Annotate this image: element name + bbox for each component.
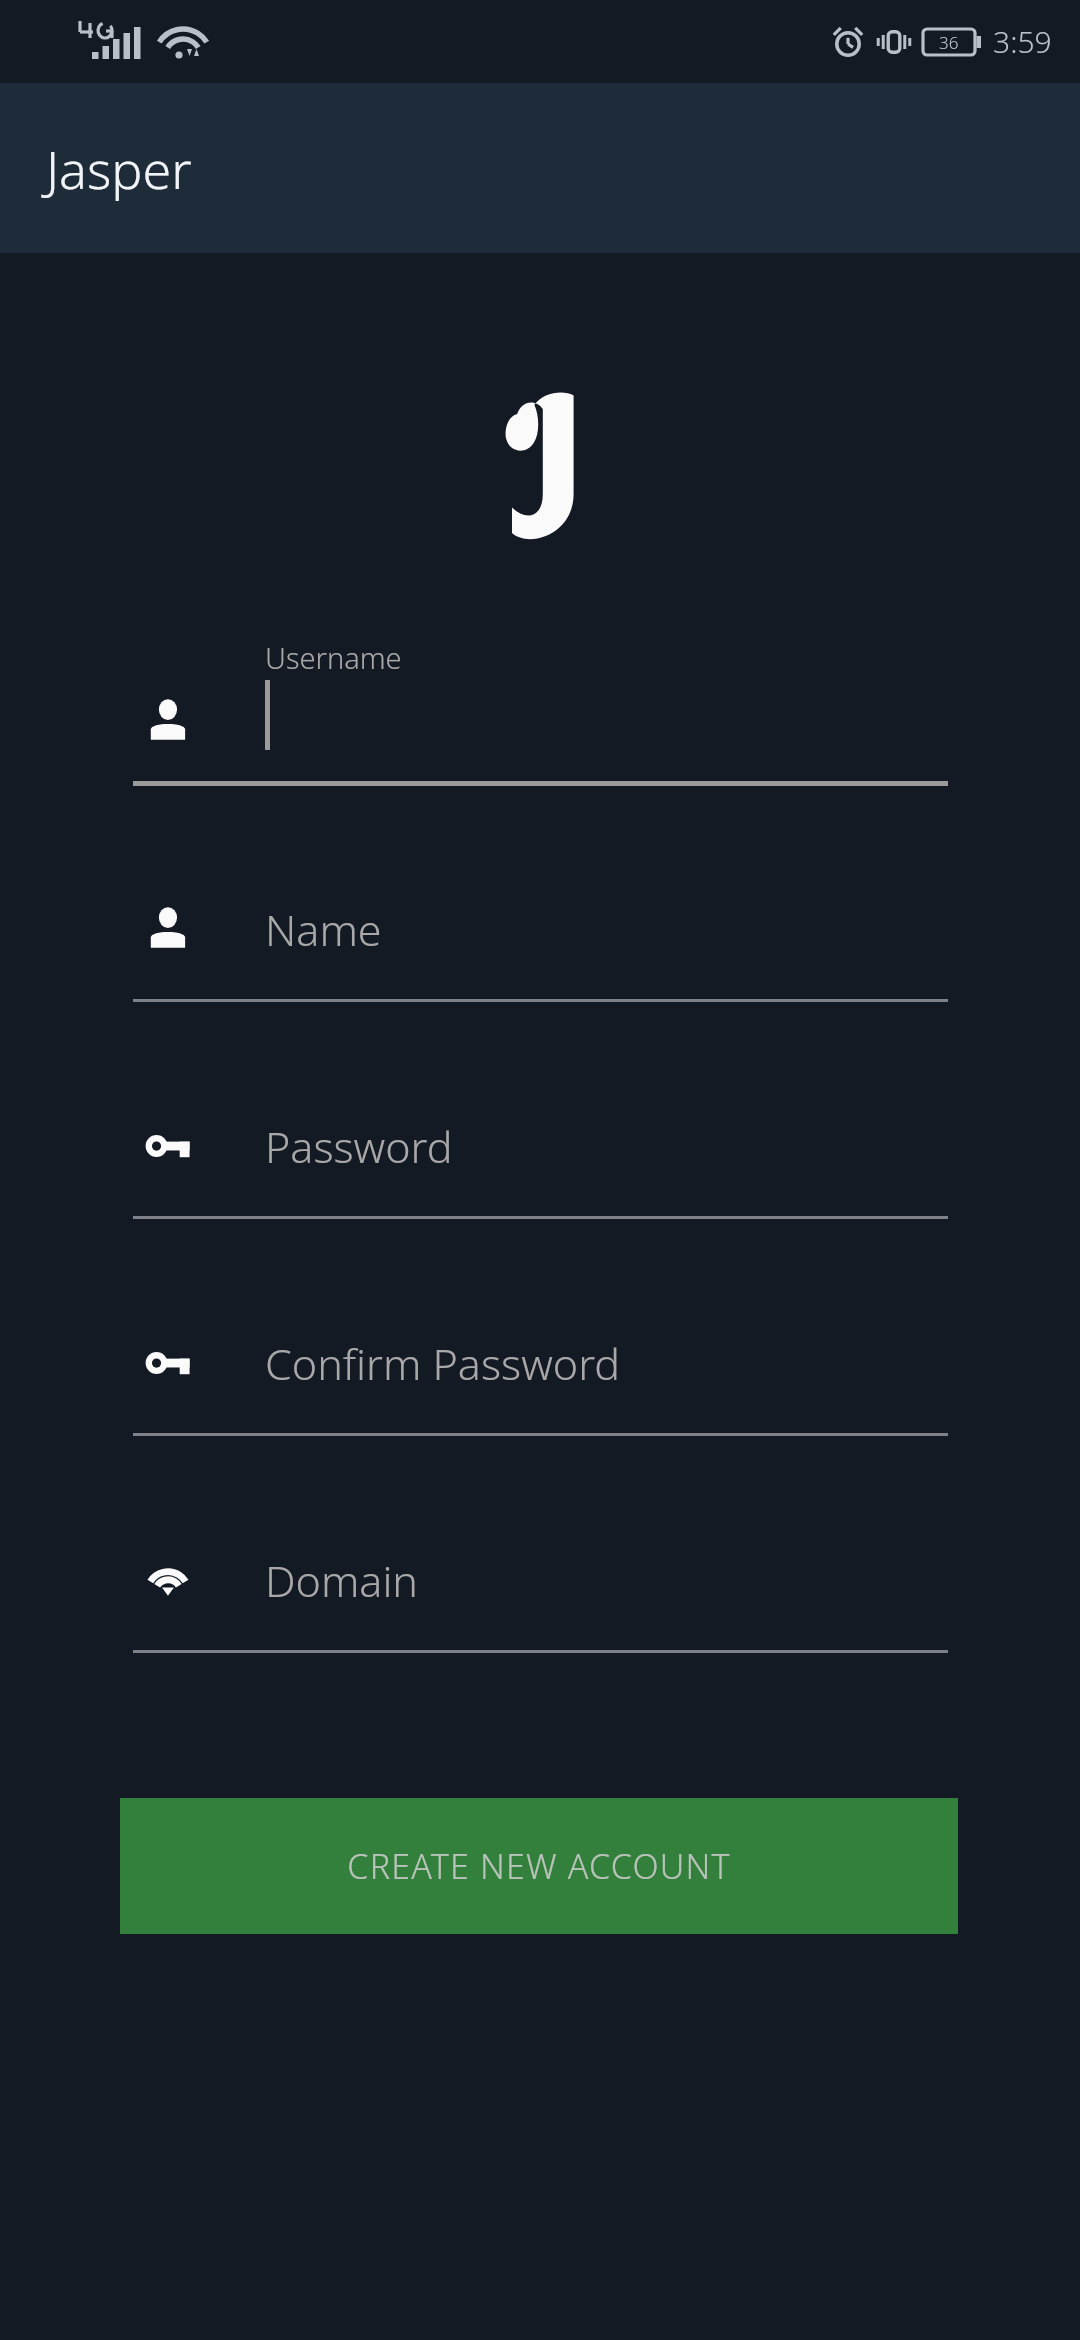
staticText: Confirm Password bbox=[265, 1334, 620, 1393]
staticText: 3:59 bbox=[993, 21, 1052, 62]
button[interactable]: Confirm Password bbox=[133, 1326, 948, 1436]
button[interactable]: CREATE NEW ACCOUNT bbox=[120, 1798, 958, 1934]
button[interactable]: Domain bbox=[133, 1543, 948, 1653]
button[interactable]: Name bbox=[133, 892, 948, 1002]
staticText: Domain bbox=[265, 1551, 418, 1610]
staticText: Password bbox=[265, 1117, 453, 1176]
button[interactable]: Password bbox=[133, 1109, 948, 1219]
staticText: CREATE NEW ACCOUNT bbox=[347, 1843, 731, 1889]
staticText: Username bbox=[265, 638, 402, 677]
staticText: Jasper bbox=[46, 133, 192, 204]
button[interactable]: Username bbox=[133, 638, 948, 786]
staticText: 36 bbox=[939, 31, 959, 54]
staticText: Name bbox=[265, 900, 382, 959]
